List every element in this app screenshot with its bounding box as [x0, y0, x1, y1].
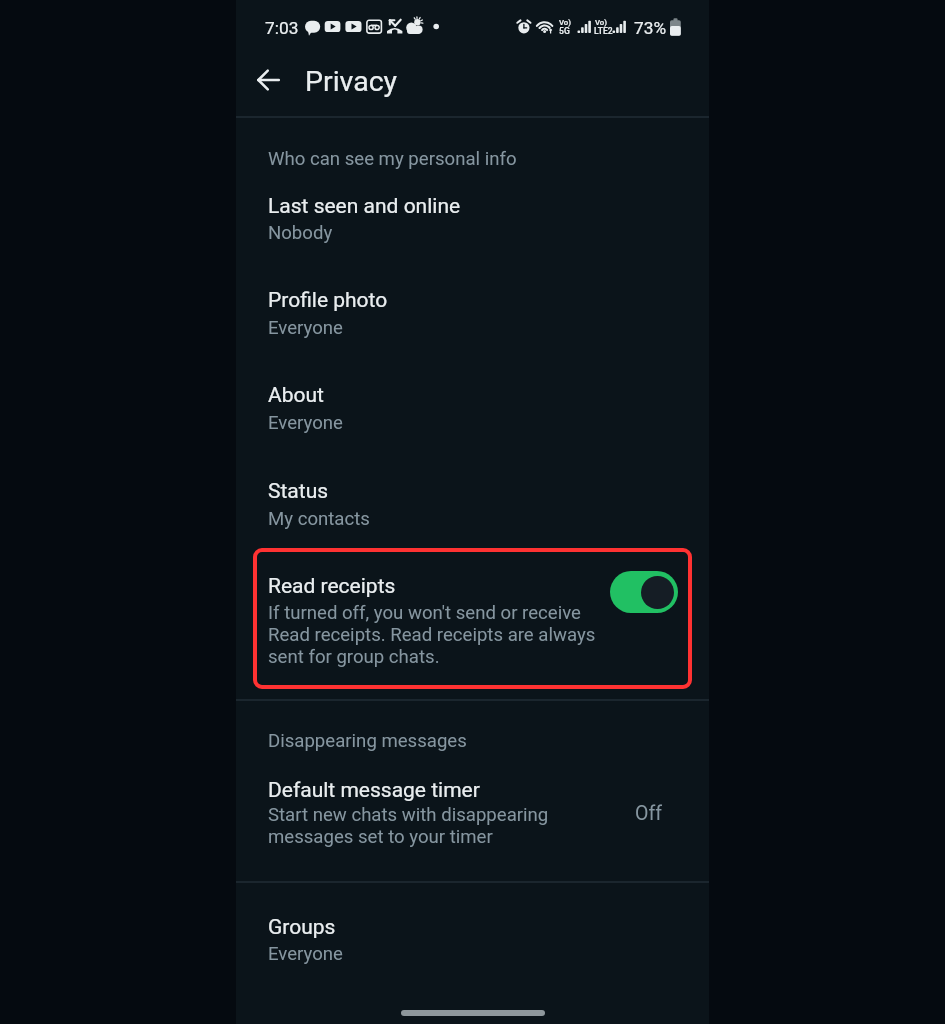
button[interactable]: About	[236, 366, 709, 438]
staticText: Profile photo	[268, 288, 388, 313]
staticText: Everyone	[268, 943, 343, 965]
staticText: LTE2	[594, 26, 613, 36]
staticText: My contacts	[268, 508, 370, 530]
staticText: Groups	[268, 915, 336, 940]
staticText: About	[268, 383, 324, 408]
button[interactable]: Read receipts toggle	[610, 571, 678, 613]
staticText: Disappearing messages	[268, 730, 467, 752]
button[interactable]: Back	[246, 57, 292, 103]
staticText: Read receipts	[268, 574, 396, 599]
staticText: Vo)	[595, 18, 608, 27]
button[interactable]: Read receipts	[236, 552, 709, 684]
staticText: Default message timer	[268, 778, 480, 803]
button[interactable]: Profile photo	[236, 271, 709, 343]
staticText: Status	[268, 479, 329, 504]
staticText: 5G	[559, 26, 570, 36]
button[interactable]: Last seen and online	[236, 177, 709, 248]
staticText: Off	[635, 802, 662, 825]
staticText: Vo)	[559, 18, 572, 27]
staticText: 73%	[634, 18, 667, 38]
staticText: Who can see my personal info	[268, 148, 517, 170]
staticText: Everyone	[268, 317, 343, 339]
staticText: If turned off, you won't send or receive…	[268, 602, 596, 668]
button[interactable]: Groups	[236, 898, 709, 969]
button[interactable]: Status	[236, 462, 709, 534]
staticText: Privacy	[305, 65, 398, 98]
staticText: Nobody	[268, 222, 333, 244]
staticText: Start new chats with disappearing messag…	[268, 804, 549, 848]
staticText: Last seen and online	[268, 194, 461, 219]
staticText: Everyone	[268, 412, 343, 434]
staticText: 7:03	[265, 18, 299, 38]
button[interactable]: Default message timer	[236, 760, 709, 860]
